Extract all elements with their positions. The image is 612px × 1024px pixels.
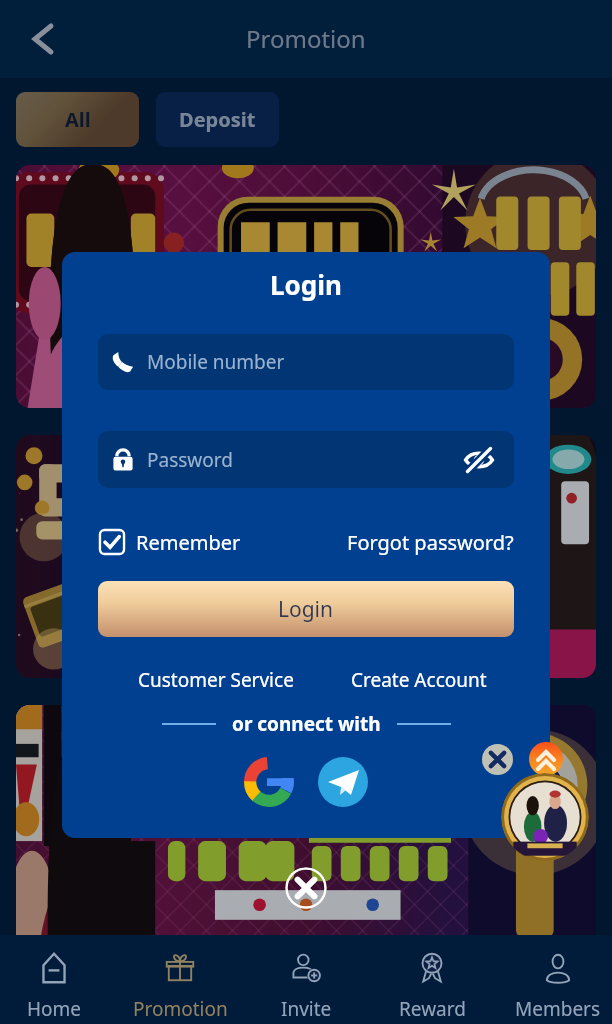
button[interactable] — [16, 435, 596, 678]
button[interactable]: Home — [0, 935, 115, 1024]
staticText: Remember — [136, 529, 241, 556]
staticText: Promotion — [133, 996, 228, 1022]
button[interactable]: Dismiss — [482, 744, 513, 775]
staticText: Deposit — [179, 106, 256, 133]
staticText: Mobile number — [147, 349, 285, 375]
button[interactable] — [16, 705, 596, 948]
staticText: Login — [278, 595, 334, 624]
button[interactable]: Create Account — [351, 666, 487, 694]
staticText: Reward — [399, 996, 466, 1022]
staticText: Members — [515, 996, 601, 1022]
button[interactable]: Login — [98, 581, 514, 637]
staticText: Password — [147, 447, 233, 473]
button[interactable]: Promotion — [119, 935, 241, 1024]
button[interactable]: Reward — [371, 935, 493, 1024]
button[interactable]: Scroll to top — [529, 742, 563, 776]
button[interactable]: Invite — [245, 935, 367, 1024]
staticText: Invite — [281, 996, 332, 1022]
staticText: All — [65, 106, 91, 133]
button[interactable]: Remember — [98, 527, 241, 557]
staticText: Home — [27, 996, 82, 1022]
button[interactable]: Promotion — [501, 773, 589, 861]
staticText: or connect with — [232, 711, 381, 737]
button[interactable]: Password — [98, 431, 514, 488]
button[interactable]: Members — [497, 935, 612, 1024]
button[interactable]: Back — [20, 17, 64, 61]
staticText: Create Account — [351, 667, 487, 693]
staticText: Promotion — [246, 22, 366, 55]
staticText: Customer Service — [138, 667, 294, 693]
button[interactable]: Sign in with Telegram — [318, 757, 368, 807]
staticText: Login — [62, 267, 550, 302]
button[interactable]: Close — [285, 867, 327, 909]
button[interactable]: Sign in with Google — [244, 757, 294, 807]
button[interactable]: Customer Service — [138, 666, 294, 694]
button[interactable]: Show password — [463, 444, 495, 476]
button[interactable]: All — [16, 92, 139, 147]
button[interactable] — [16, 165, 596, 408]
button[interactable]: Mobile number — [98, 334, 514, 390]
staticText: Forgot password? — [347, 529, 514, 556]
button[interactable]: Forgot password? — [347, 527, 514, 557]
button[interactable]: Deposit — [156, 92, 279, 147]
